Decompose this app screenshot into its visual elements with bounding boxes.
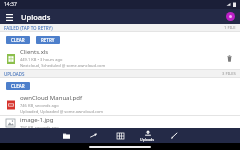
- staticText: CLEAR: [11, 83, 25, 89]
- staticText: CLEAR: [11, 37, 25, 43]
- staticText: image-1.jpg: [20, 116, 54, 124]
- button[interactable]: ownCloud Manual.pdf: [0, 94, 240, 115]
- button[interactable]: image-1.jpg: [0, 116, 240, 128]
- staticText: 449.1 KB • 3 hours ago: [20, 57, 63, 62]
- staticText: Clients.xls: [20, 48, 49, 56]
- button[interactable]: CLEAR: [6, 36, 30, 44]
- staticText: 14:37: [4, 1, 17, 8]
- staticText: 1 FILE: [224, 25, 236, 31]
- staticText: ownCloud Manual.pdf: [20, 94, 83, 102]
- button[interactable]: Account: [226, 12, 235, 21]
- staticText: 746 KB, seconds ago: [20, 103, 59, 108]
- staticText: RETRY: [41, 37, 55, 43]
- staticText: 3 FILES: [222, 71, 236, 77]
- button[interactable]: RETRY: [36, 36, 60, 44]
- button[interactable]: Open navigation menu: [3, 11, 15, 23]
- button[interactable]: Remove upload: [224, 53, 235, 64]
- button[interactable]: CLEAR: [6, 82, 30, 90]
- staticText: UPLOADS: [4, 71, 25, 77]
- staticText: Uploads: [140, 137, 155, 142]
- button[interactable]: Activity: [161, 128, 188, 143]
- button[interactable]: Uploads: [134, 128, 161, 143]
- staticText: Uploaded, Uploaded @ some.owncloud.com: [20, 109, 104, 114]
- staticText: 797 KB, seconds ago: [20, 125, 59, 128]
- button[interactable]: UPLOADS: [0, 70, 240, 77]
- staticText: FAILED (TAP TO RETRY): [4, 25, 53, 31]
- staticText: Nextcloud, Scheduled @ some.owncloud.com: [20, 63, 106, 68]
- button[interactable]: Clients.xls: [0, 48, 240, 69]
- button[interactable]: Shares: [80, 128, 107, 143]
- staticText: Uploads: [21, 12, 51, 22]
- button[interactable]: Gallery: [107, 128, 134, 143]
- button[interactable]: Files: [53, 128, 80, 143]
- button[interactable]: FAILED (TAP TO RETRY): [0, 24, 240, 31]
